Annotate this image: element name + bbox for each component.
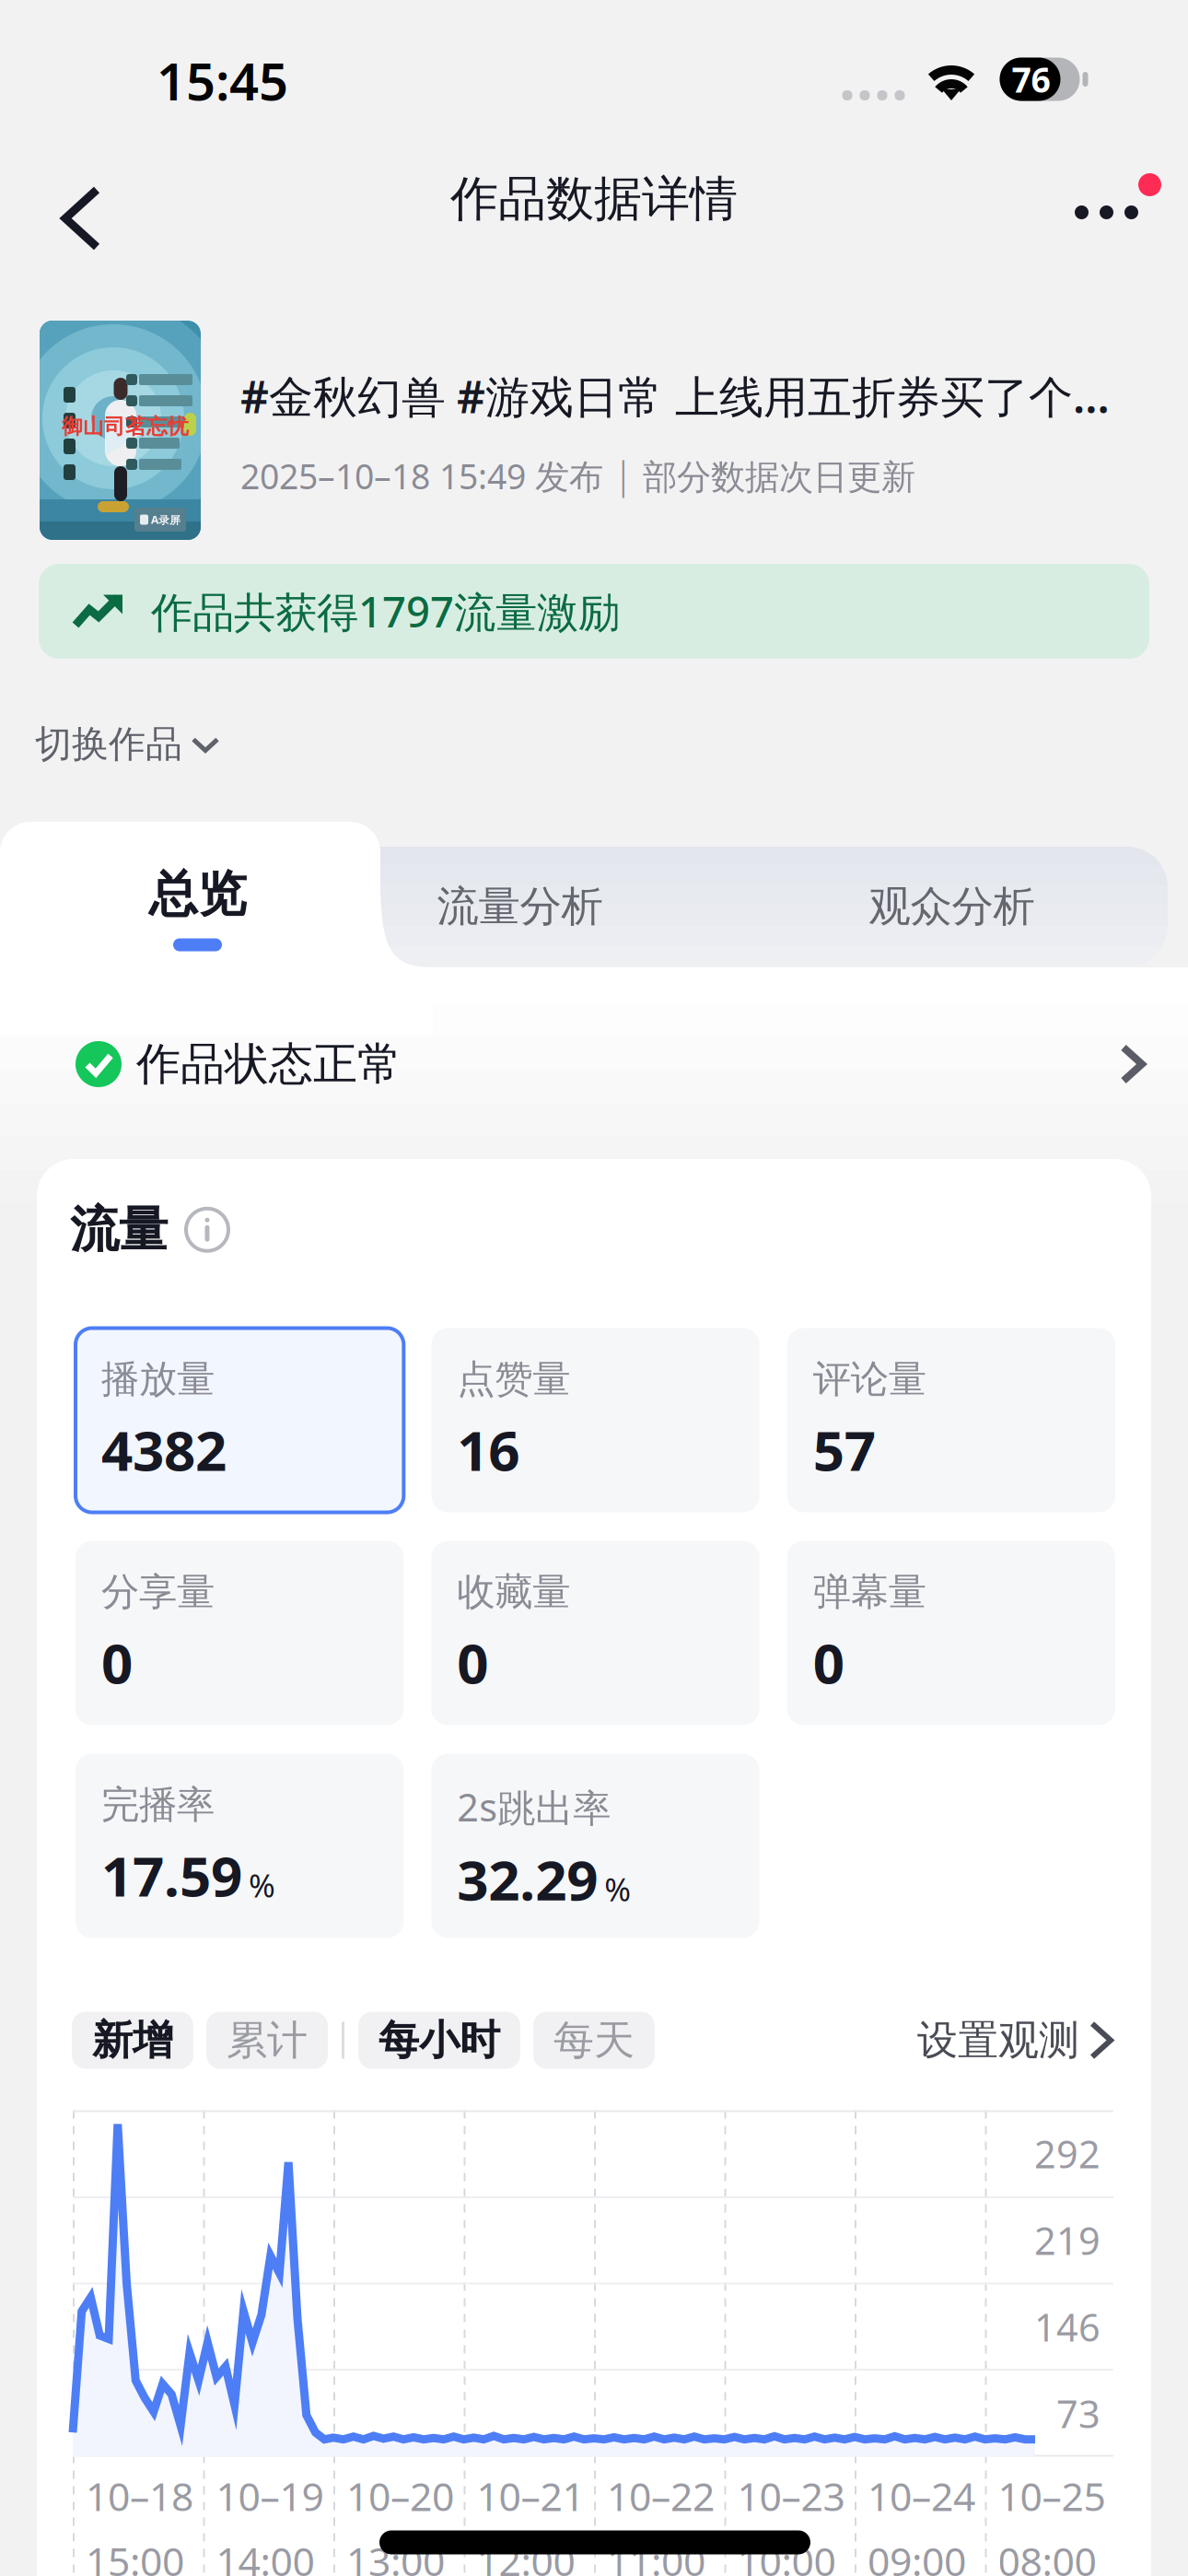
staticText: 每天 [553,2015,635,2065]
button[interactable]: 分享量 [76,1541,404,1725]
staticText: 每小时 [379,2015,500,2065]
button[interactable]: More [1065,148,1188,250]
staticText: 10–25 [998,2470,1106,2522]
staticText: 15:00 [86,2535,184,2576]
staticText: 146 [1034,2302,1101,2352]
button[interactable]: Back [0,144,144,254]
button[interactable]: 播放量 [76,1328,404,1512]
button[interactable]: 点赞量 [431,1328,759,1512]
staticText: 13:00 [346,2535,445,2576]
staticText: 观众分析 [869,881,1035,932]
button[interactable]: 新增 [72,2012,193,2069]
staticText: 收藏量 [457,1569,570,1615]
staticText: 分享量 [101,1569,215,1615]
staticText: 0 [101,1625,133,1699]
staticText: 10–23 [737,2470,845,2522]
staticText: 15:45 [157,46,288,115]
staticText: 73 [1056,2388,1101,2439]
button[interactable]: 切换作品 [0,659,219,785]
button[interactable]: 作品状态正常 [0,995,1188,1133]
button[interactable]: 御山司茗忘忧 [0,269,1188,540]
staticText: 2s跳出率 [457,1781,611,1832]
staticText: 作品共获得1797流量激励 [151,584,620,639]
button[interactable]: 2s跳出率 [431,1754,759,1938]
staticText: 作品数据详情 [450,170,738,228]
staticText: 16 [457,1413,520,1486]
staticText: % [249,1864,275,1906]
button[interactable]: 作品共获得1797流量激励 [0,540,1188,659]
button[interactable]: 每小时 [358,2012,520,2069]
staticText: 设置观测 [917,2015,1079,2065]
staticText: 292 [1034,2128,1101,2179]
staticText: 评论量 [813,1356,926,1403]
button[interactable]: 流量分析 [304,847,736,966]
staticText: 总览 [149,864,246,925]
staticText: #金秋幻兽 #游戏日常 上线用五折券买了个… [240,367,1110,425]
button[interactable]: 弹幕量 [787,1541,1115,1725]
staticText: 17.59 [101,1838,242,1912]
staticText: 流量 [70,1200,168,1260]
staticText: 作品状态正常 [136,1037,402,1091]
staticText: 219 [1034,2215,1101,2266]
staticText: 新增 [92,2015,173,2065]
staticText: % [604,1868,631,1910]
staticText: 切换作品 [35,721,182,767]
button[interactable]: 总览 [0,822,395,1034]
staticText: 76 [1012,56,1050,102]
staticText: 10–19 [216,2470,324,2522]
staticText: A录屏 [151,512,181,527]
staticText: 14:00 [216,2535,314,2576]
staticText: 点赞量 [457,1356,570,1403]
staticText: 完播率 [101,1781,215,1828]
staticText: 播放量 [101,1356,215,1403]
staticText: 0 [813,1625,844,1699]
staticText: 弹幕量 [813,1569,926,1615]
staticText: 10–20 [346,2470,454,2522]
staticText: 09:00 [868,2535,966,2576]
button[interactable]: 观众分析 [736,847,1168,966]
staticText: 御山司茗忘忧 [62,414,189,439]
button[interactable]: 评论量 [787,1328,1115,1512]
staticText: 10–21 [477,2470,584,2522]
staticText: 流量分析 [437,881,603,932]
button[interactable]: 累计 [206,2012,328,2069]
button[interactable]: 完播率 [76,1754,404,1938]
staticText: 32.29 [457,1842,598,1916]
staticText: 57 [813,1413,876,1486]
button[interactable]: 收藏量 [431,1541,759,1725]
staticText: 4382 [101,1413,227,1486]
staticText: 08:00 [998,2535,1096,2576]
button[interactable]: 设置观测 [917,2015,1116,2065]
staticText: 10–22 [607,2470,715,2522]
staticText: 12:00 [477,2535,575,2576]
button[interactable]: About traffic [186,1209,228,1251]
staticText: 10–24 [868,2470,975,2522]
staticText: 0 [457,1625,488,1699]
staticText: 2025–10–18 15:49 发布 ⏐ 部分数据次日更新 [240,453,915,499]
button[interactable]: 每天 [533,2012,655,2069]
staticText: 11:00 [607,2535,705,2576]
staticText: 10–18 [86,2470,193,2522]
staticText: 10:00 [737,2535,836,2576]
staticText: 累计 [227,2015,308,2065]
